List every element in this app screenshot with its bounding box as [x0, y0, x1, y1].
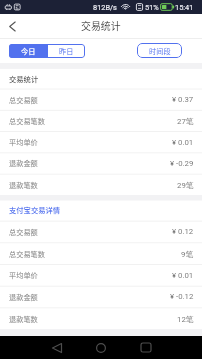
staticText: 812B/s [93, 3, 117, 12]
staticText: 支付宝交易详情 [9, 205, 61, 216]
staticText: ¥ -0.29 [170, 159, 194, 168]
staticText: ¥ 0.01 [172, 271, 194, 280]
staticText: 总交易笔数 [9, 249, 45, 259]
button[interactable]: Back [0, 14, 25, 38]
staticText: 退款金额 [9, 292, 38, 302]
button[interactable]: 昨日 [48, 44, 85, 58]
staticText: 平均单价 [9, 270, 38, 280]
staticText: 交易统计 [81, 19, 121, 33]
button[interactable] [0, 131, 202, 152]
button[interactable] [0, 110, 202, 131]
button[interactable]: Recents [129, 336, 163, 359]
button[interactable] [0, 152, 202, 173]
staticText: 时间段 [149, 46, 171, 56]
button[interactable]: Back [40, 336, 74, 359]
button[interactable]: 时间段 [137, 43, 182, 58]
staticText: 平均单价 [9, 137, 38, 147]
staticText: 总交易笔数 [9, 116, 45, 126]
staticText: ¥ 0.37 [172, 95, 194, 104]
staticText: 12笔 [177, 314, 194, 324]
button[interactable] [0, 307, 202, 329]
button[interactable] [0, 242, 202, 264]
staticText: 51% [145, 3, 159, 12]
staticText: ¥ 0.01 [172, 138, 194, 147]
button[interactable] [0, 221, 202, 243]
staticText: 29笔 [177, 180, 194, 190]
staticText: 总交易额 [9, 95, 38, 105]
button[interactable]: Home [84, 336, 118, 359]
staticText: 退款金额 [9, 158, 38, 168]
staticText: 27笔 [177, 116, 194, 126]
button[interactable]: 今日 [9, 44, 48, 58]
staticText: ¥ -0.12 [170, 292, 194, 301]
button[interactable] [0, 174, 202, 195]
staticText: 退款笔数 [9, 314, 38, 324]
staticText: ¥ 0.12 [172, 227, 194, 236]
staticText: 总交易额 [9, 227, 38, 237]
staticText: 9笔 [181, 249, 194, 259]
button[interactable] [0, 286, 202, 308]
button[interactable] [0, 69, 202, 89]
staticText: 退款笔数 [9, 180, 38, 190]
button[interactable] [0, 264, 202, 286]
staticText: 15:41 [175, 3, 194, 12]
button[interactable] [0, 89, 202, 110]
staticText: 昨日 [59, 46, 74, 56]
staticText: 交易统计 [9, 74, 39, 85]
staticText: 今日 [21, 46, 36, 56]
button[interactable] [0, 201, 202, 221]
